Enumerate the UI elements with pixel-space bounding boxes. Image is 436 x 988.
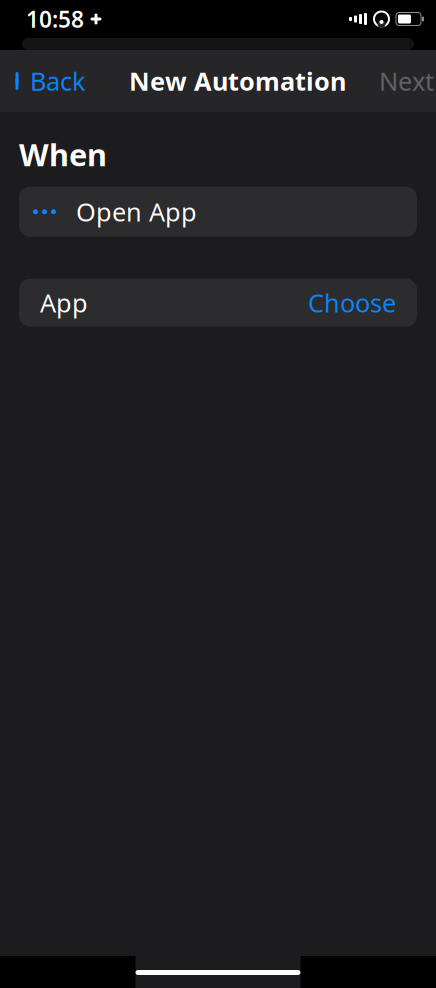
staticText: New Automation <box>129 64 346 98</box>
button[interactable]: Back <box>0 50 96 112</box>
button[interactable]: App <box>19 279 417 327</box>
button[interactable]: Next <box>379 50 436 112</box>
staticText: Open App <box>76 195 197 228</box>
staticText: Next <box>379 64 434 98</box>
staticText: Choose <box>308 286 396 319</box>
staticText: 10:58 <box>26 4 84 34</box>
staticText: App <box>40 286 88 319</box>
button[interactable]: Open App <box>19 187 417 237</box>
staticText: Back <box>30 64 86 98</box>
staticText: When <box>19 134 107 175</box>
